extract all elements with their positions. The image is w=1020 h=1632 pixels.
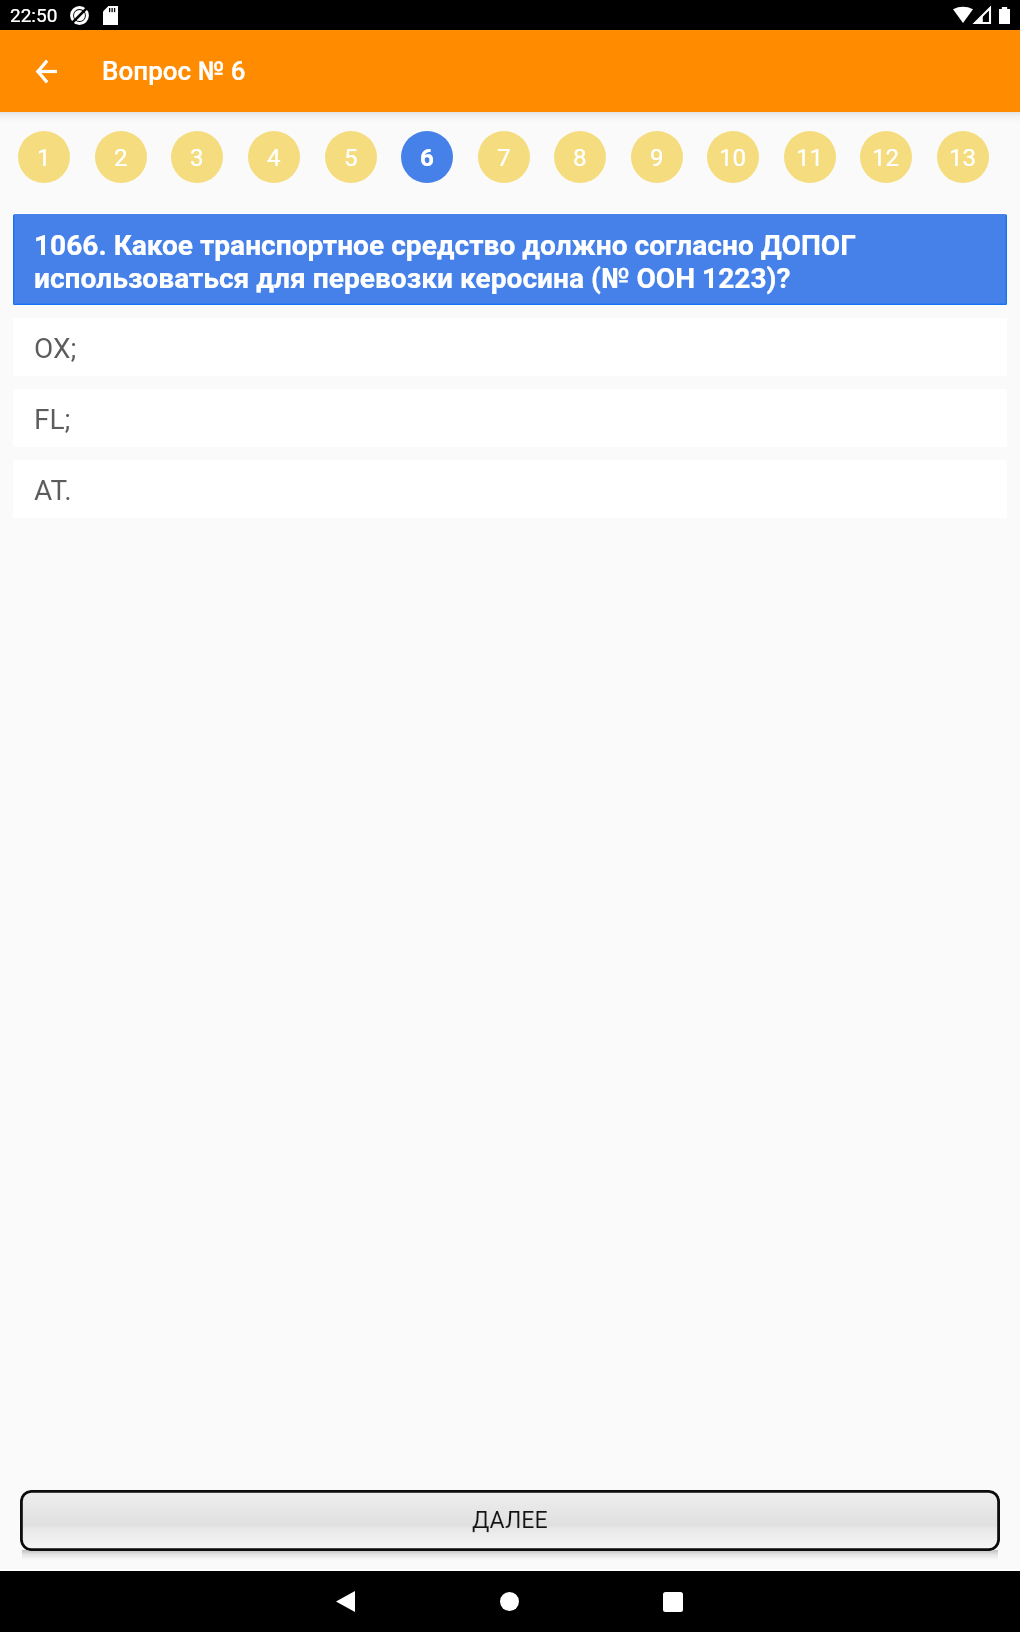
staticText: 12	[872, 144, 900, 172]
staticText: 5	[344, 144, 358, 172]
button[interactable]: 4	[248, 131, 300, 183]
button[interactable]: 9	[631, 131, 683, 183]
button[interactable]: 13	[937, 131, 989, 183]
staticText: 1066. Какое транспортное средство должно…	[34, 229, 993, 295]
button[interactable]: 3	[171, 131, 223, 183]
button[interactable]: AT.	[13, 460, 1007, 518]
staticText: 11	[796, 144, 824, 172]
staticText: FL;	[34, 403, 71, 436]
staticText: AT.	[34, 474, 72, 507]
staticText: 4	[267, 144, 281, 172]
staticText: 22:50	[10, 4, 58, 26]
staticText: 7	[497, 144, 511, 172]
button[interactable]: Recent apps	[591, 1571, 754, 1632]
button[interactable]: 8	[554, 131, 606, 183]
button[interactable]: 6	[401, 131, 453, 183]
button[interactable]: 12	[860, 131, 912, 183]
staticText: 8	[573, 144, 587, 172]
staticText: 6	[420, 144, 434, 172]
button[interactable]: 1	[18, 131, 70, 183]
button[interactable]: Back	[0, 30, 80, 112]
staticText: OX;	[34, 332, 77, 365]
button[interactable]: Back	[264, 1571, 427, 1632]
button[interactable]: 5	[325, 131, 377, 183]
button[interactable]: 7	[478, 131, 530, 183]
staticText: 1	[37, 144, 51, 172]
button[interactable]: 1066. Какое транспортное средство должно…	[13, 214, 1007, 305]
staticText: 2	[114, 144, 128, 172]
staticText: ДАЛЕЕ	[472, 1506, 548, 1533]
staticText: 9	[650, 144, 664, 172]
button[interactable]: Home	[428, 1571, 591, 1632]
staticText: 3	[190, 144, 204, 172]
button[interactable]: FL;	[13, 389, 1007, 447]
button[interactable]: 2	[95, 131, 147, 183]
staticText: 10	[719, 144, 747, 172]
button[interactable]: 11	[784, 131, 836, 183]
button[interactable]: ДАЛЕЕ	[20, 1490, 1000, 1551]
button[interactable]: 10	[707, 131, 759, 183]
button[interactable]: OX;	[13, 318, 1007, 376]
staticText: 13	[949, 144, 977, 172]
staticText: Вопрос № 6	[102, 56, 246, 86]
